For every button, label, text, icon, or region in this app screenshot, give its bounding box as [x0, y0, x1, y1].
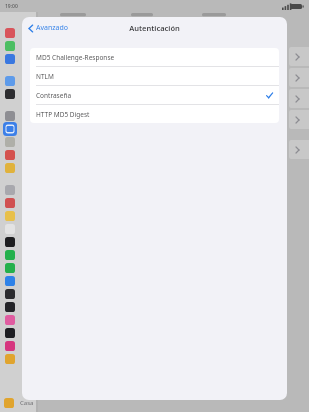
staticText: Avanzado [36, 23, 69, 33]
button[interactable]: Avanzado [22, 20, 75, 36]
staticText: 19:00 [5, 3, 18, 10]
staticText: Contraseña [36, 91, 72, 100]
button[interactable]: HTTP MD5 Digest [30, 105, 279, 123]
staticText: MD5 Challenge-Response [36, 53, 115, 62]
button[interactable]: Contraseña [30, 86, 279, 104]
staticText: HTTP MD5 Digest [36, 110, 90, 119]
button[interactable]: MD5 Challenge-Response [30, 48, 279, 66]
staticText: NTLM [36, 72, 54, 81]
staticText: Casa [20, 399, 34, 407]
staticText: Autenticación [129, 23, 180, 33]
button[interactable]: NTLM [30, 67, 279, 85]
